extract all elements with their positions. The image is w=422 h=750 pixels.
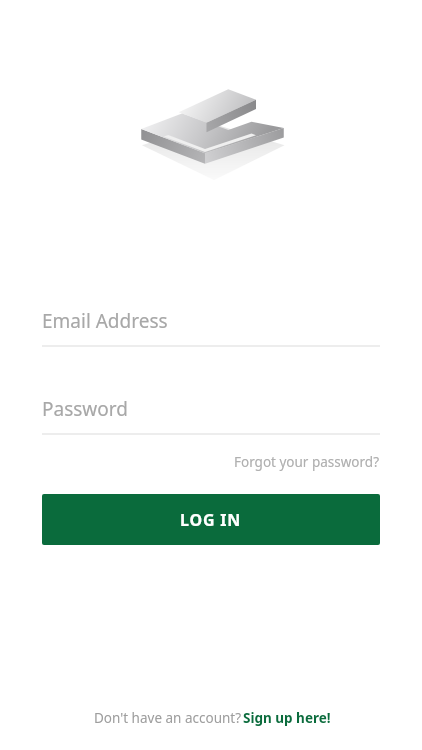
other: App logo <box>136 76 286 181</box>
staticText: Password <box>42 396 128 422</box>
staticText: Don't have an account? <box>92 709 243 727</box>
staticText: Email Address <box>42 308 168 334</box>
staticText: Forgot your password? <box>234 453 380 471</box>
button[interactable]: Email Address <box>42 296 380 345</box>
staticText: LOG IN <box>180 509 242 531</box>
button[interactable]: Don't have an account? <box>86 706 337 730</box>
staticText: Sign up here! <box>243 709 331 727</box>
button[interactable]: Password <box>42 384 380 433</box>
button[interactable]: LOG IN <box>42 494 380 545</box>
button[interactable]: Forgot your password? <box>234 449 380 475</box>
